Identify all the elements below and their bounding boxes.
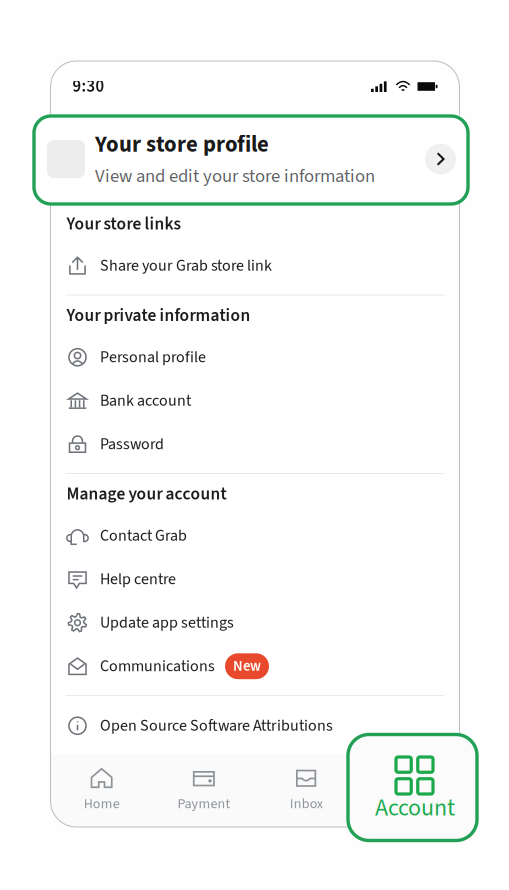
button[interactable]: Payment [153,767,255,814]
staticText: Personal profile [100,346,206,369]
staticText: 9:30 [72,75,104,98]
staticText: View and edit your store information [95,163,375,189]
staticText: Help centre [100,568,176,591]
button[interactable]: Share your Grab store link [50,244,459,287]
staticText: Contact Grab [100,524,187,547]
button[interactable]: Help centre [50,557,459,601]
staticText: Share your Grab store link [100,254,272,277]
staticText: Account [384,794,433,814]
staticText: Open Source Software Attributions [100,714,333,737]
button[interactable]: Inbox [255,767,357,814]
button[interactable]: Your store profile [34,114,468,204]
button[interactable]: Bank account [50,379,459,422]
button[interactable]: Update app settings [50,601,459,644]
staticText: Your store profile [95,129,269,161]
staticText: New [233,656,261,677]
button[interactable]: Password [50,422,459,466]
button[interactable]: Home [50,767,153,814]
button[interactable]: Communications [50,644,459,688]
staticText: Password [100,433,164,456]
button[interactable]: Personal profile [50,335,459,379]
staticText: Update app settings [100,611,234,634]
staticText: Home [84,794,120,814]
button[interactable]: Account [357,767,459,814]
button[interactable]: Open Source Software Attributions [50,696,459,747]
staticText: Your private information [66,303,250,328]
button[interactable]: Contact Grab [50,514,459,557]
staticText: Communications [100,655,215,678]
staticText: Bank account [100,389,191,412]
staticText: Account [375,791,455,825]
staticText: Payment [177,794,230,814]
staticText: Your store links [66,212,180,236]
staticText: Manage your account [66,482,226,506]
staticText: Inbox [290,794,323,814]
